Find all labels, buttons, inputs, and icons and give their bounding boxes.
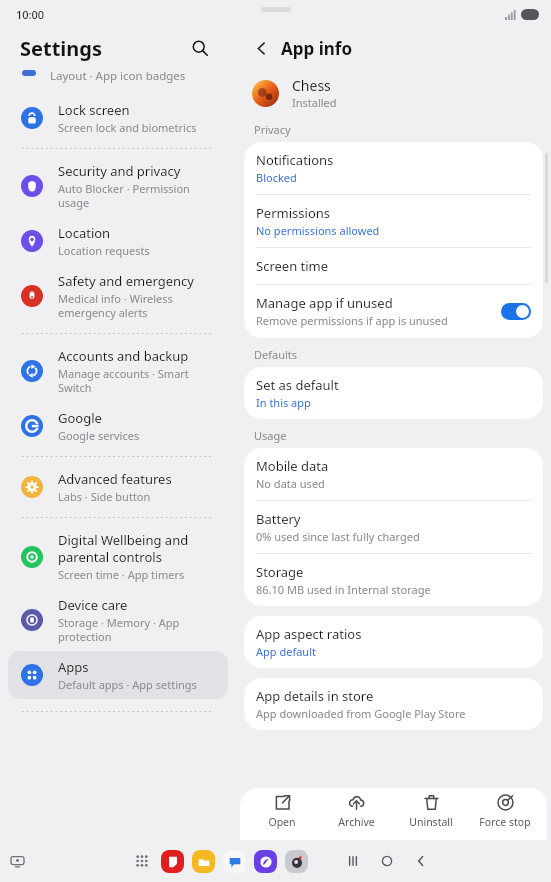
staticText: Set as default xyxy=(256,376,339,394)
staticText: Uninstall xyxy=(409,815,453,829)
staticText: No data used xyxy=(256,476,325,491)
staticText: Default apps · App settings xyxy=(58,677,197,692)
staticText: App aspect ratios xyxy=(256,625,362,643)
staticText: Notifications xyxy=(256,151,334,169)
button[interactable]: Lock screen xyxy=(8,94,228,142)
button[interactable]: Open xyxy=(249,794,315,829)
staticText: Apps xyxy=(58,658,89,676)
button[interactable]: Security and privacy xyxy=(8,155,228,217)
staticText: Manage app if unused xyxy=(256,294,393,312)
button[interactable]: Apps list xyxy=(131,850,153,872)
button[interactable]: recents xyxy=(340,848,366,874)
staticText: 10:00 xyxy=(16,7,45,22)
staticText: Mobile data xyxy=(256,457,329,475)
staticText: Archive xyxy=(338,815,375,829)
button[interactable]: Google xyxy=(8,402,228,450)
staticText: Digital Wellbeing and parental controls xyxy=(58,531,189,566)
button[interactable]: internet xyxy=(254,850,277,873)
staticText: Blocked xyxy=(256,170,297,185)
button[interactable]: Device care xyxy=(8,589,228,651)
button[interactable]: App aspect ratios xyxy=(244,616,543,668)
staticText: App details in store xyxy=(256,687,374,705)
staticText: Remove permissions if app is unused xyxy=(256,313,448,328)
button[interactable]: Mobile data xyxy=(244,448,543,500)
staticText: Storage · Memory · App protection xyxy=(58,615,180,644)
button[interactable]: Apps xyxy=(8,651,228,699)
button[interactable]: Advanced features xyxy=(8,463,228,511)
button[interactable]: back xyxy=(408,848,434,874)
staticText: Advanced features xyxy=(58,470,172,488)
button[interactable]: folder xyxy=(192,850,215,873)
staticText: Screen time · App timers xyxy=(58,567,185,582)
button[interactable]: Storage xyxy=(244,554,543,606)
staticText: Open xyxy=(268,815,296,829)
button[interactable]: Manage app if unused xyxy=(244,285,543,338)
button[interactable]: Force stop xyxy=(472,794,538,829)
staticText: Location requests xyxy=(58,243,150,258)
staticText: App info xyxy=(281,37,353,60)
button[interactable]: Screenshot xyxy=(6,850,28,872)
button[interactable]: Notifications xyxy=(244,142,543,194)
staticText: No permissions allowed xyxy=(256,223,380,238)
staticText: Labs · Side button xyxy=(58,489,151,504)
button[interactable]: camera xyxy=(285,850,308,873)
button[interactable]: Screen time xyxy=(244,248,543,284)
button[interactable]: Set as default xyxy=(244,367,543,419)
staticText: Safety and emergency xyxy=(58,272,194,290)
staticText: Google services xyxy=(58,428,140,443)
staticText: 0% used since last fully charged xyxy=(256,529,420,544)
button[interactable]: note xyxy=(161,850,184,873)
staticText: Battery xyxy=(256,510,301,528)
button[interactable]: Archive xyxy=(323,794,389,829)
staticText: Storage xyxy=(256,563,304,581)
staticText: Screen time xyxy=(256,257,329,275)
staticText: Layout · App icon badges xyxy=(50,68,186,84)
button[interactable]: Battery xyxy=(244,501,543,553)
staticText: Force stop xyxy=(479,815,531,829)
staticText: Device care xyxy=(58,596,128,614)
button[interactable]: Location xyxy=(8,217,228,265)
staticText: Privacy xyxy=(254,122,291,137)
button[interactable]: Search xyxy=(186,34,214,62)
button[interactable]: Digital Wellbeing and parental controls xyxy=(8,524,228,589)
staticText: Lock screen xyxy=(58,101,130,119)
staticText: Security and privacy xyxy=(58,162,181,180)
button[interactable]: msg xyxy=(223,850,246,873)
button[interactable]: App details in store xyxy=(244,678,543,730)
staticText: Google xyxy=(58,409,102,427)
button[interactable]: Back xyxy=(246,33,276,63)
staticText: Medical info · Wireless emergency alerts xyxy=(58,291,173,320)
button[interactable]: Permissions xyxy=(244,195,543,247)
button[interactable]: home xyxy=(374,848,400,874)
staticText: Usage xyxy=(254,428,287,443)
staticText: 86.10 MB used in Internal storage xyxy=(256,582,431,597)
staticText: App downloaded from Google Play Store xyxy=(256,706,466,721)
staticText: App default xyxy=(256,644,316,659)
staticText: Installed xyxy=(292,95,337,110)
staticText: Screen lock and biometrics xyxy=(58,120,197,135)
button[interactable]: Accounts and backup xyxy=(8,340,228,402)
staticText: In this app xyxy=(256,395,311,410)
staticText: Manage accounts · Smart Switch xyxy=(58,366,189,395)
staticText: Auto Blocker · Permission usage xyxy=(58,181,190,210)
staticText: Chess xyxy=(292,76,331,95)
button[interactable]: Uninstall xyxy=(398,794,464,829)
staticText: Permissions xyxy=(256,204,331,222)
staticText: Location xyxy=(58,224,111,242)
staticText: Accounts and backup xyxy=(58,347,189,365)
button[interactable]: Safety and emergency xyxy=(8,265,228,327)
staticText: Settings xyxy=(20,35,102,62)
staticText: Defaults xyxy=(254,347,298,362)
